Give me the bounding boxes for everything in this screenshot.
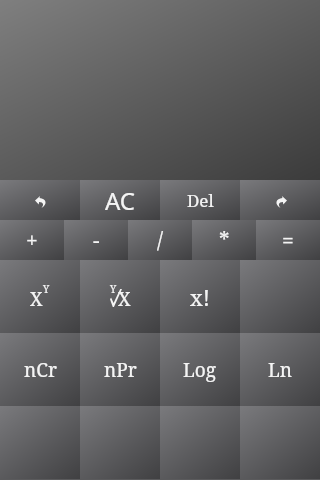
button[interactable]: + <box>0 220 64 260</box>
button[interactable]: Undo <box>0 180 80 220</box>
button[interactable]: X <box>80 260 160 333</box>
staticText: nCr <box>24 357 57 383</box>
staticText: nPr <box>104 357 137 383</box>
button[interactable]: / <box>128 220 192 260</box>
staticText: - <box>93 226 100 255</box>
button[interactable]: * <box>192 220 256 260</box>
staticText: x! <box>190 282 211 312</box>
staticText: Y <box>43 282 50 296</box>
staticText: AC <box>105 184 136 217</box>
staticText: Del <box>187 189 214 212</box>
button[interactable]: = <box>256 220 320 260</box>
button[interactable]: - <box>64 220 128 260</box>
staticText: X <box>30 286 43 308</box>
button[interactable]: Log <box>160 333 240 406</box>
button[interactable] <box>240 260 320 333</box>
staticText: X <box>118 286 131 308</box>
button[interactable] <box>0 406 80 479</box>
button[interactable]: X <box>0 260 80 333</box>
button[interactable]: nPr <box>80 333 160 406</box>
staticText: Log <box>183 357 217 383</box>
button[interactable]: Ln <box>240 333 320 406</box>
button[interactable]: x! <box>160 260 240 333</box>
staticText: + <box>26 226 38 255</box>
staticText: = <box>282 226 294 255</box>
button[interactable]: AC <box>80 180 160 220</box>
button[interactable] <box>240 406 320 479</box>
button[interactable]: Redo <box>240 180 320 220</box>
button[interactable] <box>80 406 160 479</box>
button[interactable]: nCr <box>0 333 80 406</box>
staticText: * <box>219 226 230 255</box>
staticText: Ln <box>268 357 293 383</box>
button[interactable]: Del <box>160 180 240 220</box>
staticText: Y <box>110 282 117 296</box>
staticText: / <box>157 226 164 255</box>
button[interactable] <box>160 406 240 479</box>
